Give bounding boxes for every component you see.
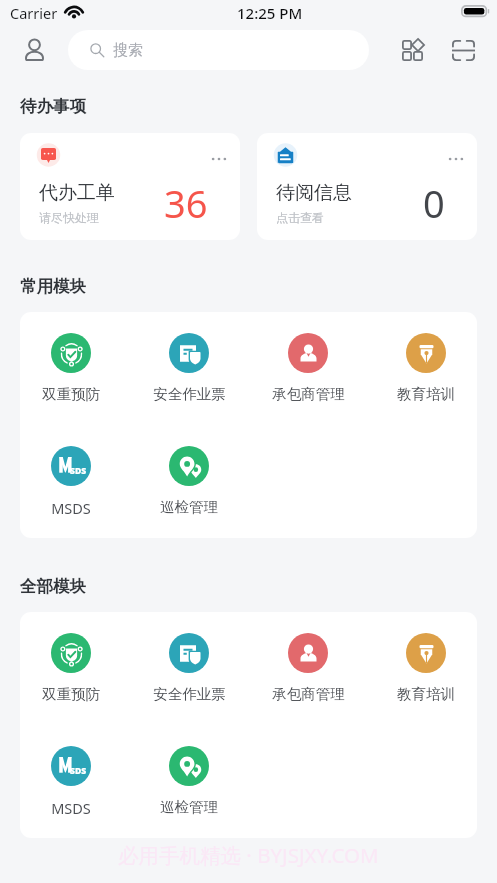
staticText: 双重预防 — [42, 385, 100, 403]
button[interactable]: Scan — [443, 30, 483, 70]
button[interactable]: 巡检管理 — [130, 446, 248, 516]
button[interactable]: Profile — [14, 30, 54, 70]
button[interactable]: 双重预防 — [20, 333, 130, 403]
staticText: 待阅信息 — [276, 181, 352, 205]
staticText: 教育培训 — [397, 385, 455, 403]
staticText: 全部模块 — [20, 576, 86, 597]
button[interactable]: SDS — [20, 446, 130, 518]
button[interactable]: 待阅信息 — [257, 133, 477, 240]
button[interactable]: 巡检管理 — [130, 746, 248, 816]
button[interactable]: 教育培训 — [367, 333, 477, 403]
staticText: 代办工单 — [39, 181, 115, 205]
staticText: 安全作业票 — [153, 385, 226, 403]
staticText: 点击查看 — [276, 210, 324, 225]
button[interactable]: Apps — [392, 30, 432, 70]
staticText: 36 — [164, 177, 208, 229]
staticText: 巡检管理 — [160, 498, 218, 516]
staticText: MSDS — [51, 798, 91, 818]
staticText: 待办事项 — [20, 96, 86, 117]
button[interactable]: 承包商管理 — [249, 333, 367, 403]
staticText: 12:25 PM — [237, 3, 303, 23]
staticText: 0 — [423, 177, 445, 229]
staticText: 双重预防 — [42, 685, 100, 703]
staticText: MSDS — [51, 498, 91, 518]
staticText: 搜索 — [113, 41, 143, 60]
button[interactable]: 安全作业票 — [130, 633, 248, 703]
staticText: Carrier — [10, 3, 58, 23]
staticText: 安全作业票 — [153, 685, 226, 703]
staticText: 必用手机精选 · BYJSJXY.COM — [118, 841, 379, 869]
button[interactable]: 双重预防 — [20, 633, 130, 703]
staticText: 承包商管理 — [272, 385, 345, 403]
button[interactable]: 安全作业票 — [130, 333, 248, 403]
staticText: 常用模块 — [20, 276, 86, 297]
button[interactable]: 承包商管理 — [249, 633, 367, 703]
staticText: SDS — [70, 765, 87, 777]
button[interactable]: SDS — [20, 746, 130, 818]
staticText: 巡检管理 — [160, 798, 218, 816]
staticText: 教育培训 — [397, 685, 455, 703]
button[interactable]: 教育培训 — [367, 633, 477, 703]
staticText: 请尽快处理 — [39, 210, 99, 225]
button[interactable]: 代办工单 — [20, 133, 240, 240]
staticText: 承包商管理 — [272, 685, 345, 703]
button[interactable]: 搜索 — [68, 30, 369, 70]
staticText: SDS — [70, 465, 87, 477]
